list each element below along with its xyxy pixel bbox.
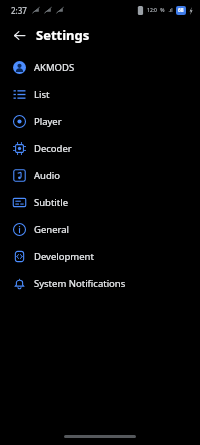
button[interactable]: Back xyxy=(6,22,32,48)
staticText: List xyxy=(34,88,50,101)
button[interactable]: Audio xyxy=(0,162,200,189)
button[interactable]: Development xyxy=(0,243,200,270)
staticText: 2:37 xyxy=(11,5,27,16)
button[interactable]: General xyxy=(0,216,200,243)
button[interactable]: List xyxy=(0,81,200,108)
button[interactable]: Decoder xyxy=(0,135,200,162)
staticText: 68 xyxy=(178,7,184,14)
staticText: AKMODS xyxy=(34,61,75,74)
staticText: Player xyxy=(34,115,62,128)
staticText: Decoder xyxy=(34,142,72,155)
staticText: System Notifications xyxy=(34,277,126,290)
staticText: General xyxy=(34,223,70,236)
staticText: Development xyxy=(34,250,94,263)
staticText: Subtitle xyxy=(34,196,69,209)
staticText: Audio xyxy=(34,169,60,182)
staticText: Settings xyxy=(36,26,90,44)
staticText: 12:0 xyxy=(147,7,157,14)
button[interactable]: Player xyxy=(0,108,200,135)
button[interactable]: AKMODS xyxy=(0,54,200,81)
button[interactable]: Subtitle xyxy=(0,189,200,216)
staticText: .ıl xyxy=(168,7,173,14)
button[interactable]: System Notifications xyxy=(0,270,200,297)
staticText: % xyxy=(160,7,165,14)
